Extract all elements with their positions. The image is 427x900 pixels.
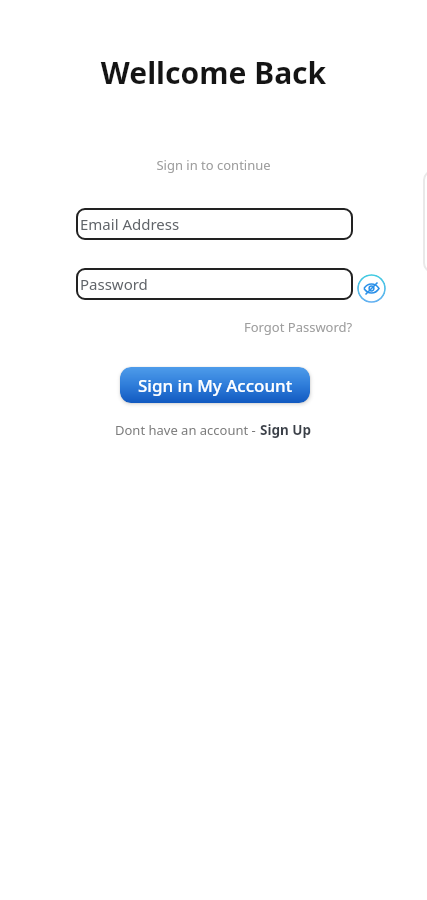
button[interactable]: Forgot Password? [244, 318, 353, 336]
staticText: Password [80, 274, 148, 294]
staticText: Sign in to continue [0, 156, 427, 174]
button[interactable]: Password [76, 268, 353, 300]
staticText: Dont have an account - [115, 421, 260, 439]
button[interactable]: Sign Up [260, 421, 312, 439]
staticText: Wellcome Back [0, 52, 427, 93]
staticText: Sign in My Account [138, 374, 293, 397]
button[interactable]: Sign in My Account [120, 367, 310, 403]
button[interactable]: Email Address [76, 208, 353, 240]
staticText: Email Address [80, 214, 180, 234]
button[interactable] [357, 274, 386, 303]
